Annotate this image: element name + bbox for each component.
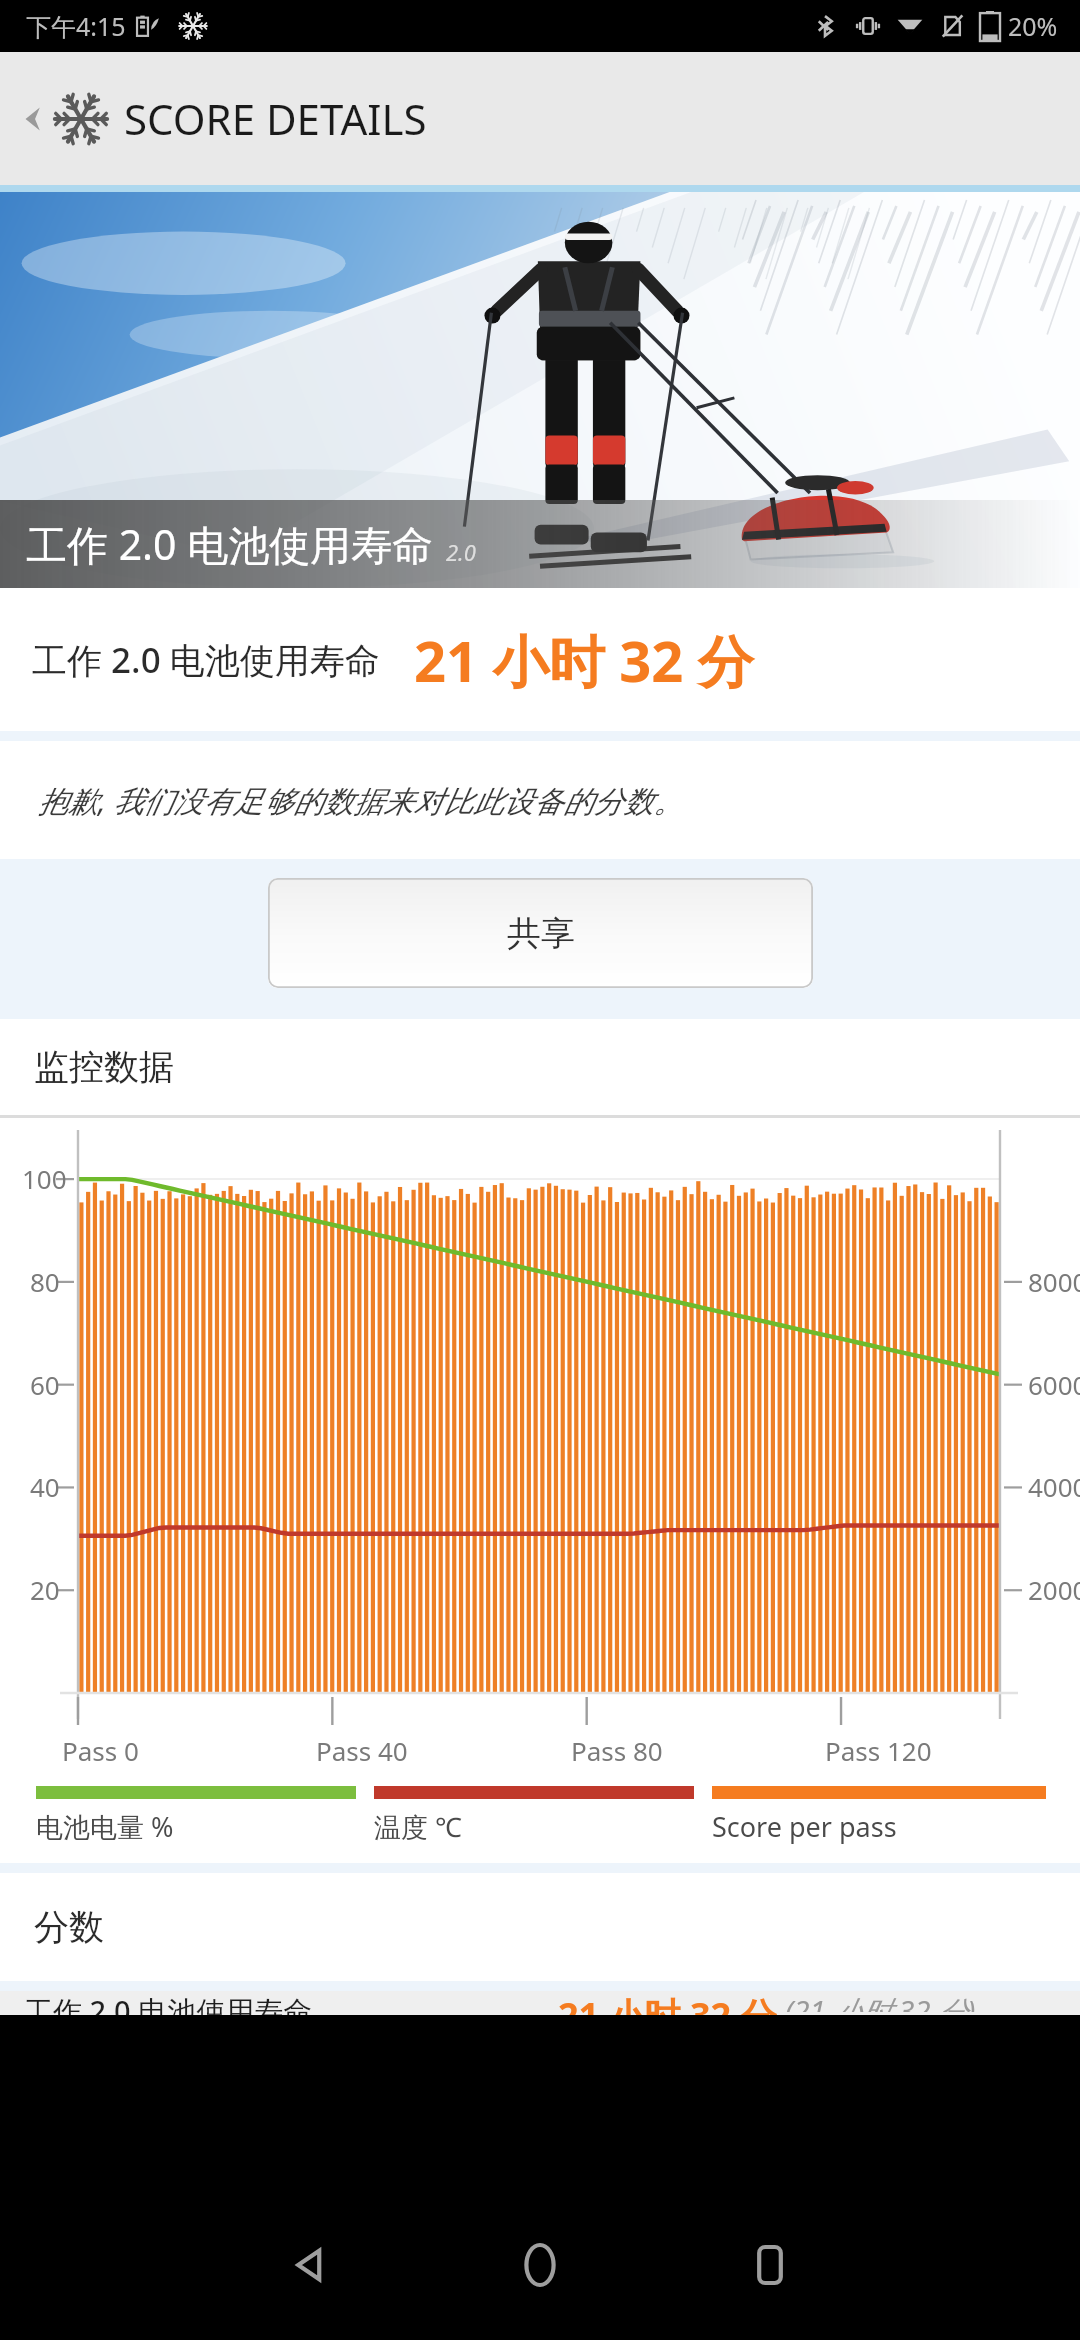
button[interactable]: Home: [480, 2205, 600, 2325]
button[interactable]: 工作 2.0 电池使用寿命: [0, 1991, 1080, 2015]
staticText: 共享: [507, 912, 575, 955]
staticText: 监控数据: [34, 1045, 174, 1089]
staticText: Pass 0: [62, 1733, 139, 1768]
staticText: 分数: [34, 1905, 104, 1949]
staticText: 工作 2.0 电池使用寿命: [26, 516, 434, 572]
button[interactable]: Back: [0, 52, 1080, 185]
staticText: 6000: [1028, 1367, 1080, 1402]
button[interactable]: Back: [250, 2205, 370, 2325]
button[interactable]: Recent apps: [710, 2205, 830, 2325]
staticText: 抱歉, 我们没有足够的数据来对比此设备的分数。: [38, 780, 684, 821]
staticText: 电池电量 %: [36, 1808, 174, 1845]
other: Back: [16, 102, 50, 136]
staticText: Pass 40: [316, 1733, 408, 1768]
staticText: 温度 ℃: [374, 1808, 462, 1845]
staticText: 2.0: [446, 537, 476, 567]
staticText: 下午4:15: [26, 9, 126, 43]
staticText: 20: [30, 1572, 60, 1607]
staticText: 21 小时 32 分: [558, 1991, 777, 2015]
staticText: 2000: [1028, 1572, 1080, 1607]
staticText: 100: [22, 1161, 67, 1196]
staticText: 40: [30, 1469, 60, 1504]
staticText: 80: [30, 1264, 60, 1299]
staticText: 21 小时 32 分: [414, 622, 754, 698]
staticText: (21 小时 32 分): [785, 1991, 976, 2012]
staticText: 4000: [1028, 1469, 1080, 1504]
staticText: 8000: [1028, 1264, 1080, 1299]
staticText: 工作 2.0 电池使用寿命: [32, 636, 380, 684]
staticText: 60: [30, 1367, 60, 1402]
button[interactable]: 工作 2.0 电池使用寿命: [0, 588, 1080, 731]
staticText: SCORE DETAILS: [124, 90, 427, 147]
staticText: 20%: [1008, 9, 1058, 43]
staticText: 工作 2.0 电池使用寿命: [24, 1991, 313, 2015]
staticText: Pass 80: [571, 1733, 663, 1768]
staticText: Pass 120: [825, 1733, 932, 1768]
staticText: Score per pass: [712, 1808, 897, 1845]
button[interactable]: 共享: [268, 878, 813, 988]
